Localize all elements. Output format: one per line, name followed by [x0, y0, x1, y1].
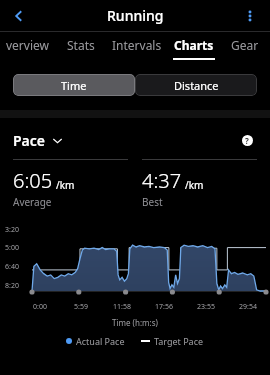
staticText: 23:55: [197, 302, 215, 312]
staticText: /km: [56, 178, 75, 192]
staticText: verview: [6, 37, 49, 53]
staticText: 4:37: [142, 167, 182, 194]
staticText: 8:20: [5, 281, 19, 291]
staticText: 11:58: [113, 302, 131, 312]
staticText: Stats: [67, 37, 95, 53]
button[interactable]: More options: [235, 1, 265, 31]
staticText: 5:00: [5, 243, 19, 253]
staticText: 29:54: [239, 302, 257, 312]
button[interactable]: 6:05: [13, 167, 128, 209]
button[interactable]: Help: [237, 130, 257, 150]
staticText: 3:20: [5, 225, 19, 235]
staticText: 17:56: [155, 302, 173, 312]
button[interactable]: Distance: [135, 74, 257, 96]
staticText: Average: [13, 195, 52, 209]
staticText: Running: [107, 6, 164, 25]
button[interactable]: Back: [4, 1, 34, 31]
button[interactable]: Pace: [13, 131, 63, 150]
staticText: Gear: [231, 37, 259, 53]
staticText: Intervals: [112, 37, 162, 53]
staticText: Pace: [13, 131, 46, 150]
button[interactable]: Charts: [168, 32, 219, 65]
button[interactable]: Intervals: [106, 32, 168, 65]
button[interactable]: Target Pace: [141, 335, 204, 347]
staticText: Charts: [174, 37, 214, 53]
button[interactable]: 4:37: [142, 167, 257, 209]
button[interactable]: Stats: [55, 32, 106, 65]
button[interactable]: verview: [0, 32, 55, 65]
staticText: Actual Pace: [76, 335, 125, 347]
staticText: ?: [245, 135, 249, 146]
staticText: 0:00: [33, 302, 47, 312]
button[interactable]: Time: [13, 74, 135, 96]
staticText: Time: [61, 78, 87, 93]
staticText: /km: [185, 178, 204, 192]
staticText: 6:40: [5, 262, 19, 272]
button[interactable]: Actual Pace: [66, 335, 125, 347]
staticText: 5:59: [74, 302, 88, 312]
staticText: Time (h:m:s): [0, 317, 270, 328]
staticText: 6:05: [13, 167, 53, 194]
staticText: Target Pace: [154, 335, 204, 347]
staticText: Distance: [174, 78, 219, 93]
staticText: Best: [142, 195, 163, 209]
button[interactable]: Gear: [219, 32, 270, 65]
